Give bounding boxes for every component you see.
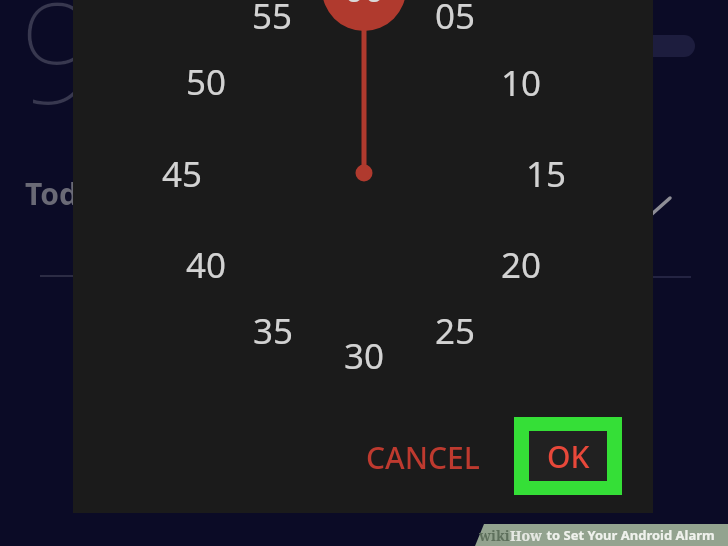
button[interactable]: OK bbox=[514, 417, 622, 495]
staticText: 15 bbox=[526, 150, 567, 198]
staticText: wiki bbox=[479, 526, 510, 545]
staticText: OK bbox=[547, 436, 590, 477]
button[interactable]: CANCEL bbox=[363, 427, 483, 487]
staticText: 35 bbox=[253, 307, 294, 355]
staticText: 30 bbox=[344, 332, 385, 380]
staticText: 00 bbox=[344, 0, 385, 13]
staticText: 20 bbox=[501, 241, 542, 289]
staticText: 25 bbox=[435, 307, 476, 355]
staticText: 10 bbox=[501, 59, 542, 107]
staticText: CANCEL bbox=[366, 437, 480, 478]
staticText: 45 bbox=[162, 150, 203, 198]
staticText: Today bbox=[25, 173, 114, 214]
staticText: to Set Your Android Alarm bbox=[543, 526, 715, 544]
staticText: How bbox=[510, 526, 543, 545]
staticText: 50 bbox=[186, 58, 227, 106]
staticText: 55 bbox=[252, 0, 293, 40]
staticText: 40 bbox=[186, 241, 227, 289]
staticText: 05 bbox=[435, 0, 476, 40]
staticText: 9 bbox=[20, 0, 100, 144]
